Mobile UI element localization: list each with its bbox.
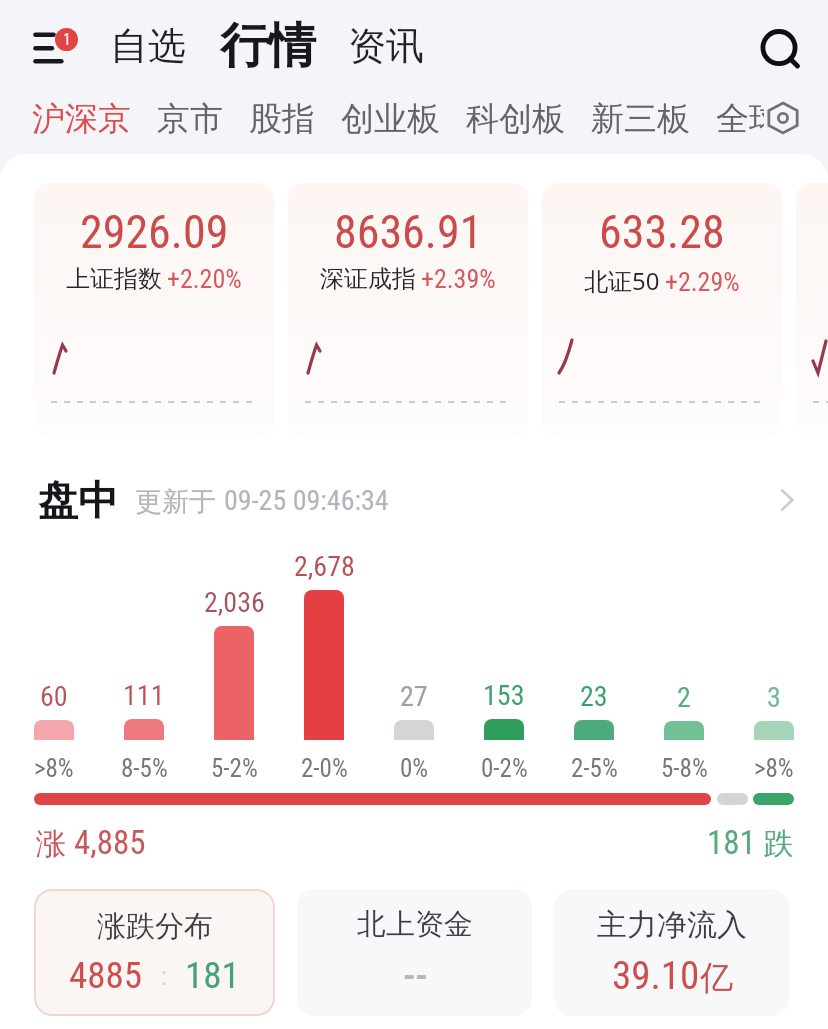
staticText: 跌 bbox=[756, 822, 794, 862]
staticText: +2.20% bbox=[167, 264, 242, 294]
staticText: : bbox=[143, 961, 185, 991]
staticText: +2.39% bbox=[421, 264, 496, 294]
staticText: 0-2% bbox=[481, 754, 528, 783]
button[interactable]: 科创板 bbox=[466, 98, 565, 140]
staticText: 上证指数 bbox=[66, 264, 162, 294]
staticText: 主力净流入 bbox=[597, 906, 747, 944]
staticText: 153 bbox=[483, 679, 525, 712]
staticText: 1 bbox=[63, 30, 71, 49]
button[interactable]: 行情 bbox=[220, 16, 316, 76]
staticText: 深证成指 bbox=[320, 264, 416, 294]
staticText: 0% bbox=[400, 754, 429, 783]
button[interactable]: 全球 bbox=[716, 98, 782, 140]
button[interactable]: 创业板 bbox=[341, 98, 440, 140]
staticText: 8636.91 bbox=[334, 205, 483, 259]
button[interactable]: 沪深京 bbox=[32, 98, 131, 140]
staticText: 2-5% bbox=[571, 754, 618, 783]
staticText: 2,678 bbox=[294, 550, 355, 583]
button[interactable]: 京市 bbox=[157, 98, 223, 140]
button[interactable]: 633.28 bbox=[542, 183, 782, 437]
staticText: 盘中 bbox=[38, 475, 118, 525]
button[interactable]: 新三板 bbox=[591, 98, 690, 140]
staticText: 2-0% bbox=[301, 754, 348, 783]
button[interactable]: 盘中 bbox=[0, 470, 828, 530]
button[interactable]: 涨跌分布 bbox=[34, 889, 275, 1016]
staticText: 633.28 bbox=[599, 205, 725, 259]
staticText: 181 bbox=[707, 823, 756, 862]
staticText: 111 bbox=[123, 679, 165, 712]
button[interactable]: 8636.91 bbox=[288, 183, 528, 437]
staticText: 2 bbox=[677, 681, 691, 714]
staticText: 北上资金 bbox=[357, 906, 473, 943]
staticText: 4885 bbox=[69, 954, 143, 997]
staticText: 4,885 bbox=[74, 823, 146, 862]
button[interactable]: 资讯 bbox=[348, 22, 424, 70]
staticText: 涨 bbox=[36, 822, 74, 862]
staticText: +2.29% bbox=[665, 267, 740, 297]
staticText: 27 bbox=[400, 680, 428, 713]
button[interactable]: 2926.09 bbox=[34, 183, 274, 437]
button[interactable]: Edit tabs bbox=[762, 97, 804, 139]
staticText: 8-5% bbox=[121, 754, 168, 783]
staticText: 181 bbox=[185, 954, 240, 997]
button[interactable]: 北上资金 bbox=[297, 889, 532, 1016]
staticText: 更新于 bbox=[135, 482, 224, 519]
staticText: 60 bbox=[40, 680, 68, 713]
staticText: 39.10 bbox=[612, 953, 700, 999]
staticText: 09-25 09:46:34 bbox=[224, 484, 389, 517]
staticText: 5-8% bbox=[661, 754, 708, 783]
staticText: 2926.09 bbox=[80, 205, 229, 259]
staticText: 2,036 bbox=[204, 586, 265, 619]
staticText: >8% bbox=[754, 754, 794, 783]
button[interactable]: 主力净流入 bbox=[554, 889, 789, 1016]
staticText: 亿 bbox=[700, 957, 733, 999]
button[interactable]: Search bbox=[751, 19, 809, 77]
button[interactable]: Menu bbox=[22, 14, 84, 76]
button[interactable]: 股指 bbox=[249, 98, 315, 140]
button[interactable]: 3145.66 bbox=[796, 183, 828, 437]
staticText: 北证50 bbox=[584, 264, 660, 297]
staticText: 23 bbox=[580, 680, 608, 713]
staticText: 3 bbox=[767, 681, 781, 714]
staticText: 涨跌分布 bbox=[97, 908, 213, 945]
staticText: >8% bbox=[34, 754, 74, 783]
staticText: -- bbox=[403, 952, 428, 999]
staticText: 5-2% bbox=[211, 754, 258, 783]
button[interactable]: 自选 bbox=[110, 22, 186, 70]
